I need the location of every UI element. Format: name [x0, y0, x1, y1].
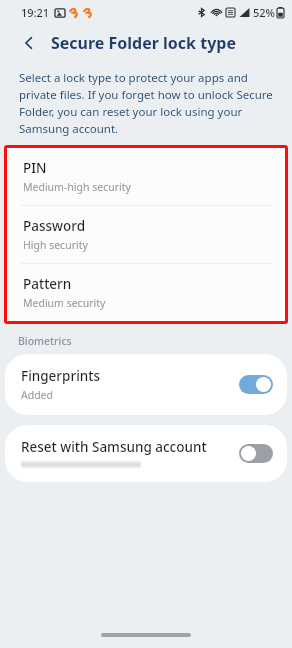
button[interactable]: Toggle off [239, 444, 273, 463]
staticText: Password [23, 217, 86, 235]
button[interactable]: Toggle on [239, 375, 273, 394]
staticText: Secure Folder lock type [51, 32, 236, 54]
staticText: Fingerprints [21, 367, 100, 385]
staticText: Medium-high security [23, 180, 131, 194]
button[interactable]: PIN [7, 148, 285, 205]
staticText: Reset with Samsung account [21, 438, 207, 456]
button[interactable]: Pattern [7, 264, 285, 321]
staticText: Medium security [23, 296, 106, 310]
button[interactable]: Back [14, 28, 44, 58]
staticText: 52% [253, 5, 275, 20]
staticText: 19:21 [21, 5, 50, 20]
button[interactable]: Password [7, 206, 285, 263]
staticText: Biometrics [18, 334, 72, 348]
staticText: Added [21, 388, 54, 402]
staticText: PIN [23, 159, 47, 177]
button[interactable]: Fingerprints [5, 354, 287, 415]
staticText: Select a lock type to protect your apps … [19, 70, 275, 136]
button[interactable]: Reset with Samsung account [5, 425, 287, 482]
staticText: Pattern [23, 275, 72, 293]
staticText: High security [23, 238, 88, 252]
